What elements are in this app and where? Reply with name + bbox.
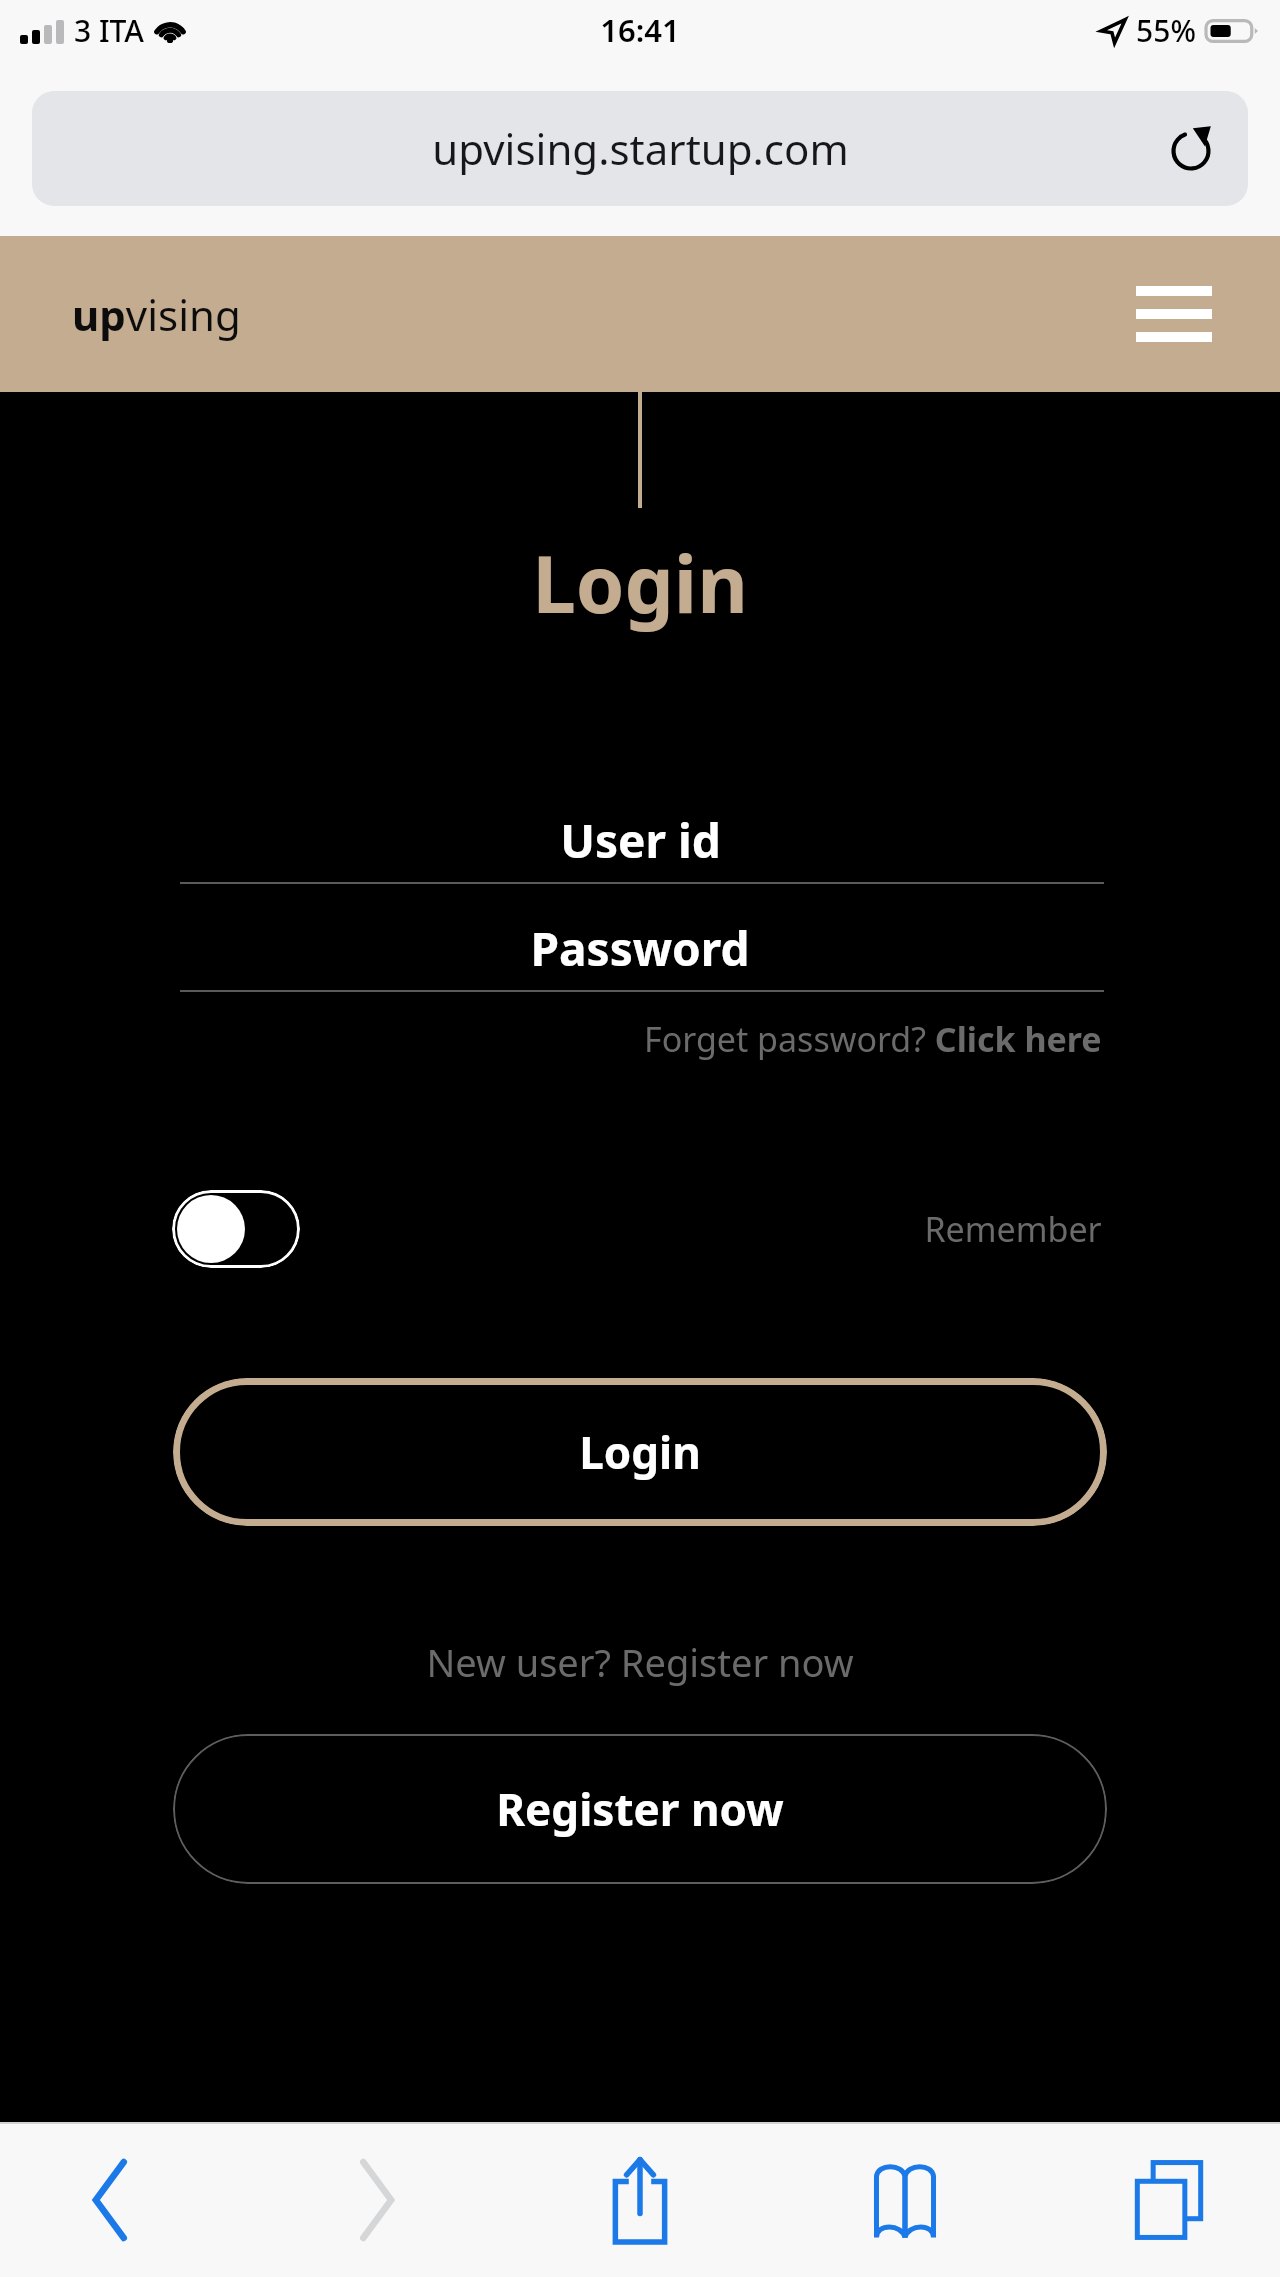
button[interactable]: upvising.startup.com bbox=[32, 91, 1248, 206]
button[interactable]: Reload page bbox=[1160, 118, 1222, 180]
staticText: upvising.startup.com bbox=[432, 120, 849, 177]
button[interactable]: Forget password? Click here bbox=[644, 1016, 1102, 1062]
button[interactable]: User id bbox=[0, 798, 1280, 884]
button[interactable]: Bookmarks bbox=[830, 2140, 980, 2260]
button[interactable]: Remember me toggle bbox=[172, 1190, 300, 1268]
button[interactable]: Login bbox=[173, 1378, 1107, 1526]
button[interactable]: New user? Register now bbox=[426, 1636, 854, 1688]
staticText: Register now bbox=[496, 1779, 784, 1839]
staticText: 16:41 bbox=[600, 9, 680, 51]
button[interactable]: Menu bbox=[1126, 269, 1222, 359]
button[interactable]: Share bbox=[565, 2140, 715, 2260]
staticText: User id bbox=[560, 809, 721, 872]
button[interactable]: Tabs bbox=[1094, 2140, 1244, 2260]
staticText: upvising bbox=[72, 286, 241, 343]
staticText: Login bbox=[532, 530, 748, 636]
button[interactable]: Back bbox=[36, 2140, 186, 2260]
button[interactable]: Register now bbox=[173, 1734, 1107, 1884]
staticText: Login bbox=[579, 1422, 701, 1482]
staticText: Forget password? Click here bbox=[644, 1016, 1102, 1062]
staticText: 55% bbox=[1136, 10, 1196, 51]
button[interactable]: Forward bbox=[301, 2140, 451, 2260]
button[interactable]: upvising bbox=[72, 286, 241, 343]
staticText: Remember bbox=[924, 1206, 1102, 1252]
staticText: New user? Register now bbox=[426, 1636, 854, 1688]
button[interactable]: Password bbox=[0, 906, 1280, 992]
staticText: Password bbox=[530, 917, 750, 980]
staticText: 3 ITA bbox=[74, 10, 144, 51]
